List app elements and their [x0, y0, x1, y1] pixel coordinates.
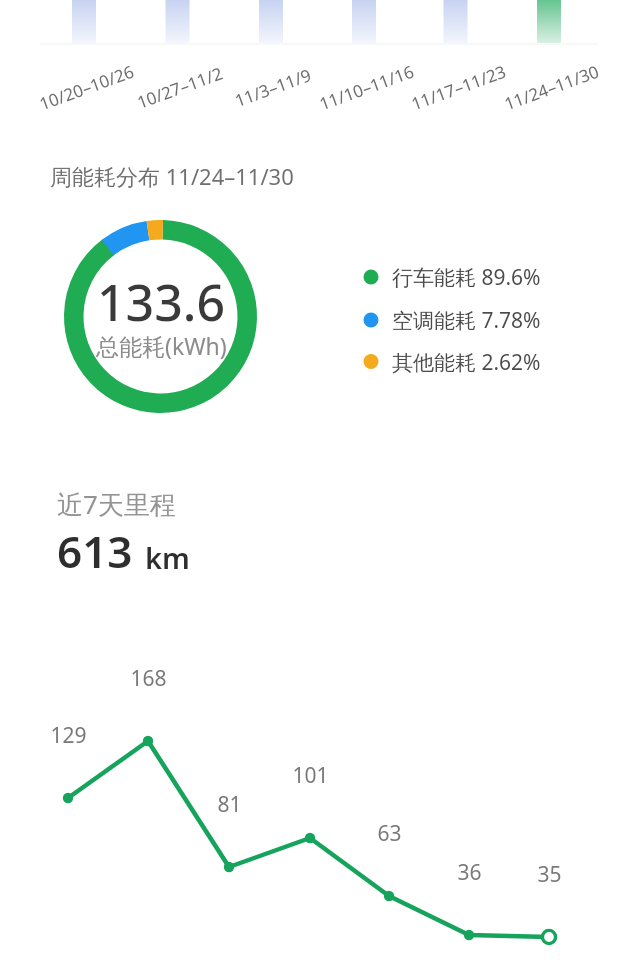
staticText: 101 — [292, 761, 329, 790]
staticText: 总能耗(kWh) — [96, 330, 227, 361]
staticText: 其他能耗 2.62% — [392, 348, 541, 377]
staticText: km — [145, 538, 190, 577]
staticText: 行车能耗 89.6% — [392, 263, 541, 292]
staticText: 近7天里程 — [57, 486, 176, 522]
staticText: 周能耗分布 11/24–11/30 — [50, 161, 294, 191]
staticText: 11/10–11/16 — [316, 60, 417, 115]
staticText: 35 — [537, 860, 562, 889]
button[interactable]: 行车能耗 89.6% — [360, 259, 560, 295]
staticText: 空调能耗 7.78% — [392, 306, 541, 335]
staticText: 613 — [57, 521, 133, 581]
staticText: 168 — [130, 664, 167, 693]
staticText: 11/17–11/23 — [408, 60, 509, 115]
button[interactable]: 空调能耗 7.78% — [360, 302, 560, 338]
staticText: 129 — [50, 721, 87, 750]
staticText: 10/20–10/26 — [36, 60, 137, 115]
staticText: 11/3–11/9 — [231, 63, 314, 112]
staticText: 133.6 — [97, 268, 225, 328]
staticText: 10/27–11/2 — [134, 61, 226, 114]
button[interactable]: 其他能耗 2.62% — [360, 344, 560, 380]
staticText: 81 — [217, 790, 242, 819]
staticText: 11/24–11/30 — [501, 60, 602, 115]
staticText: 36 — [457, 858, 482, 887]
staticText: 63 — [377, 819, 402, 848]
